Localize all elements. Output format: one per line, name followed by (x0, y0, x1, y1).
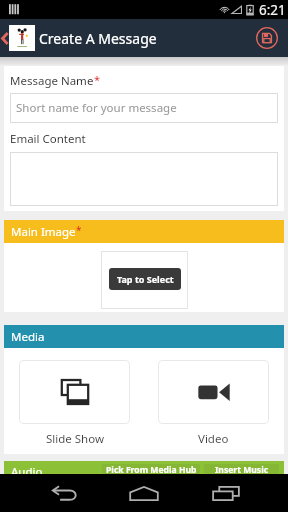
staticText: Message Name (10, 73, 94, 89)
staticText: * (94, 72, 101, 87)
staticText: Video (198, 431, 229, 447)
button[interactable]: Short name for your message (10, 93, 278, 123)
button[interactable]: Recent apps (201, 474, 261, 512)
button[interactable]: Media (4, 325, 284, 348)
button[interactable]: Back (0, 19, 250, 57)
staticText: Create A Message (39, 29, 157, 48)
staticText: Media (11, 329, 45, 345)
staticText: Insert Music (215, 464, 269, 474)
button[interactable] (10, 152, 278, 206)
button[interactable]: Back (27, 474, 87, 512)
staticText: Audio (11, 464, 43, 474)
button[interactable]: Pick From Media Hub (102, 464, 200, 474)
staticText: 6:21 (259, 1, 286, 19)
staticText: Slide Show (46, 431, 104, 447)
button[interactable]: Main Image (4, 220, 284, 243)
staticText: Main Image (11, 224, 76, 240)
button[interactable]: Insert Music (204, 464, 279, 474)
staticText: Pick From Media Hub (106, 464, 197, 474)
button[interactable]: Home (114, 474, 174, 512)
staticText: Tap to Select (117, 273, 174, 285)
button[interactable]: Tap to Select (109, 268, 181, 290)
button[interactable]: Save (250, 19, 283, 57)
button[interactable] (19, 360, 130, 424)
staticText: Short name for your message (16, 100, 177, 116)
button[interactable] (158, 360, 269, 424)
staticText: * (76, 223, 82, 237)
other: Back (1, 32, 8, 45)
staticText: Email Content (10, 131, 86, 147)
